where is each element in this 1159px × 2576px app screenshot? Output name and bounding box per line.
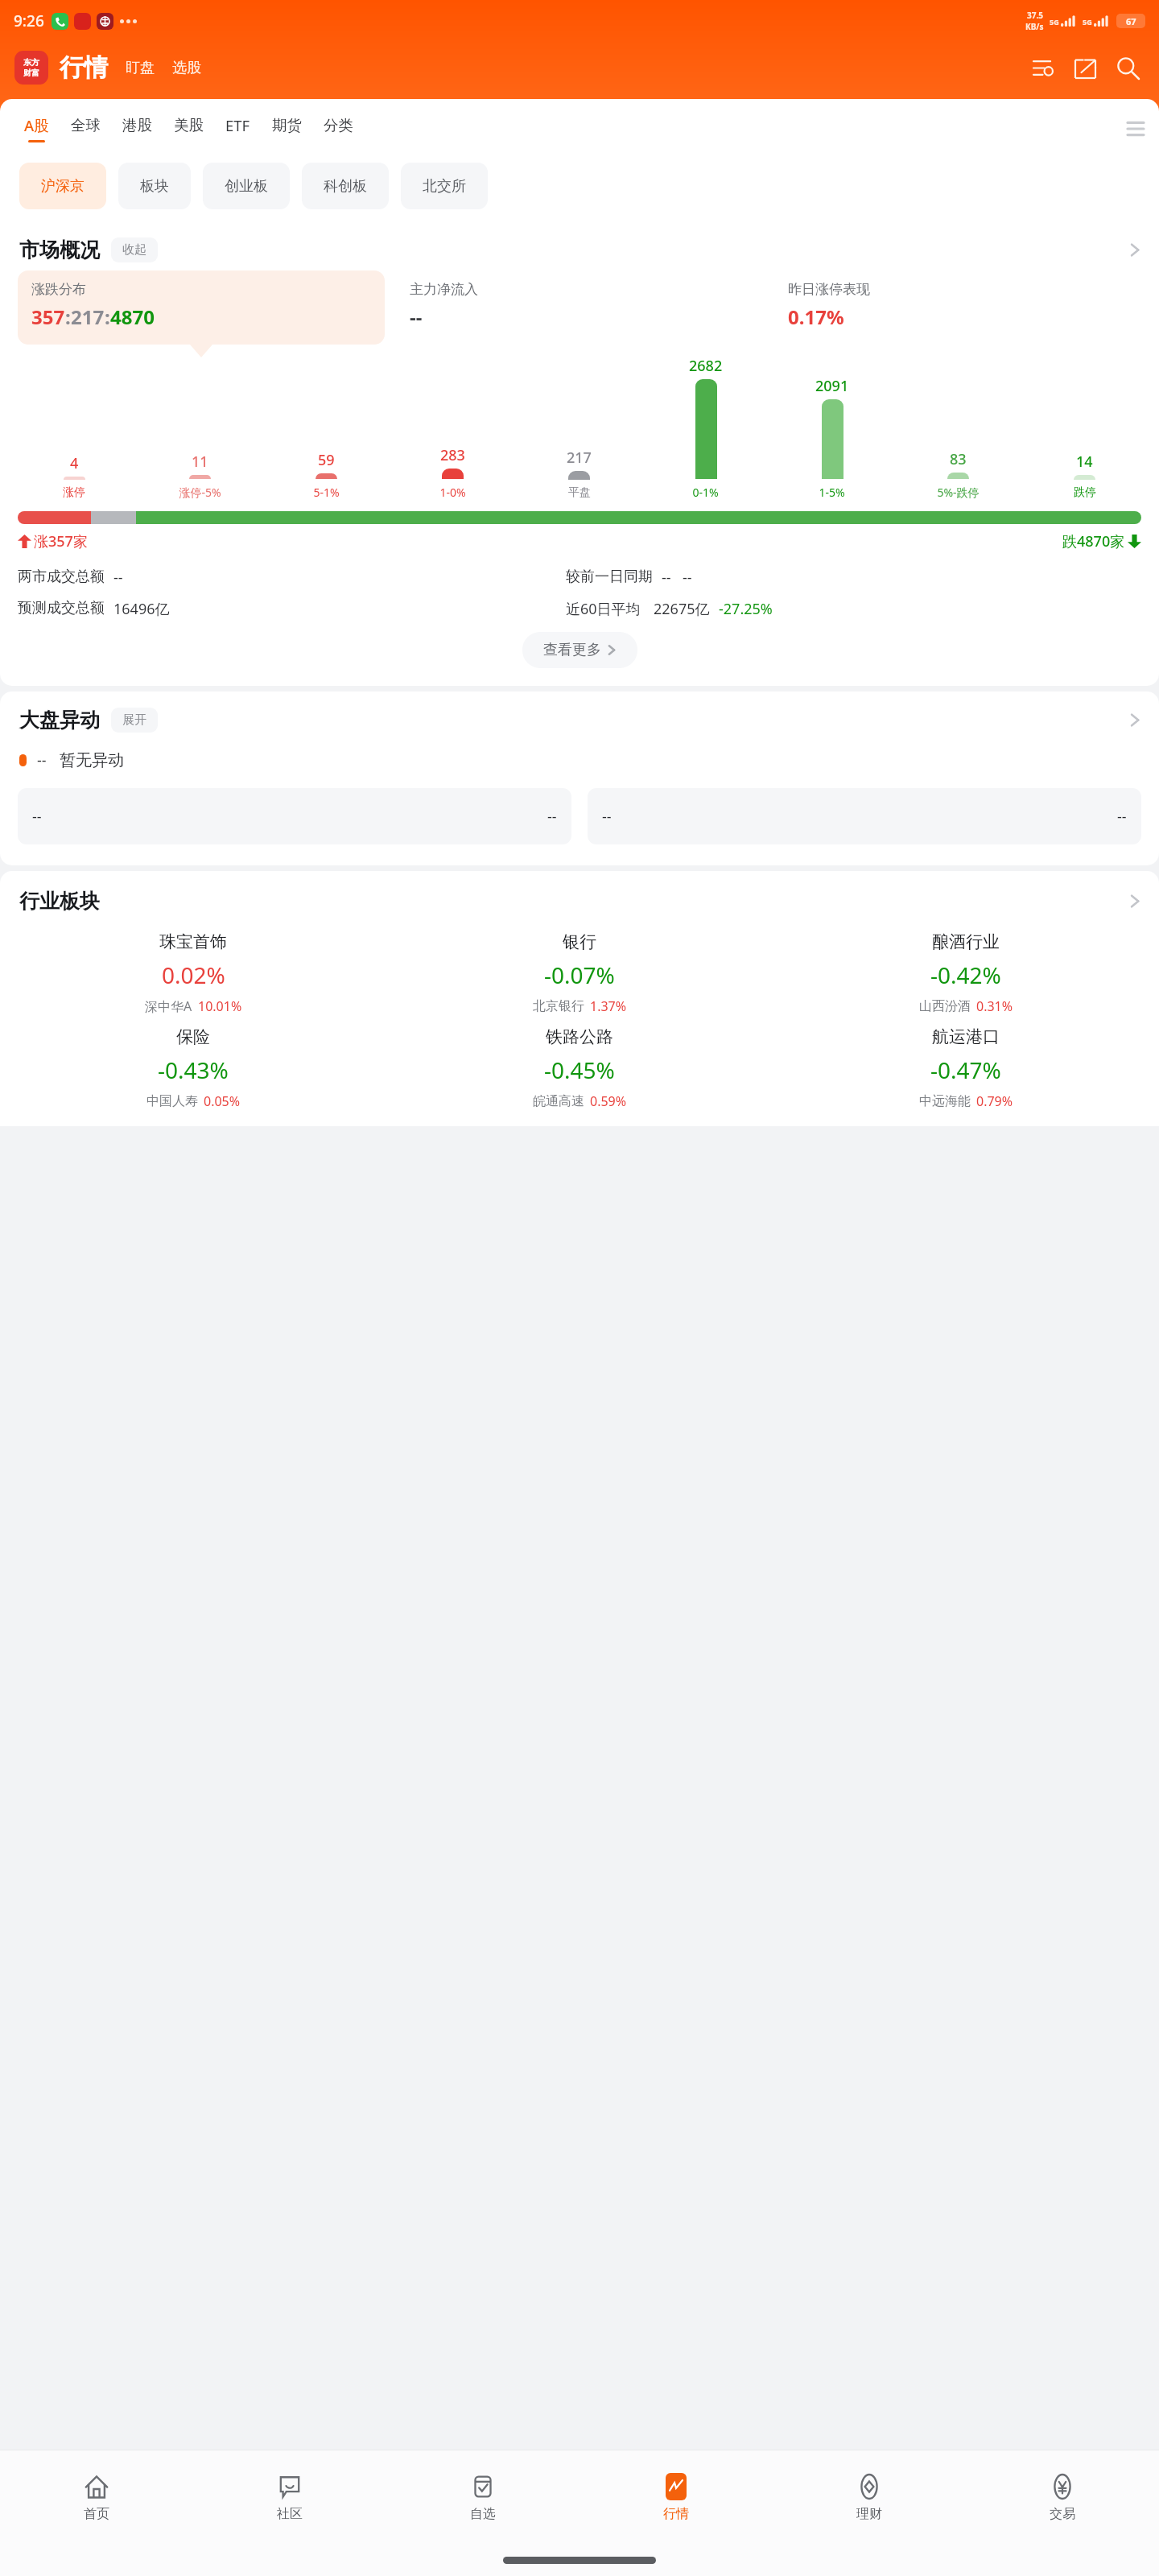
staticText: -- [1117, 807, 1127, 827]
button[interactable]: 行业板块 [19, 889, 1141, 914]
staticText: 22675亿 [654, 599, 710, 619]
button[interactable]: 设置 [1027, 52, 1059, 84]
staticText: -0.47% [930, 1055, 1001, 1085]
staticText: 1-5% [819, 485, 845, 500]
staticText: 0.31% [976, 997, 1013, 1015]
staticText: -0.45% [544, 1055, 615, 1085]
button[interactable]: 14 [1021, 353, 1148, 503]
staticText: 1-0% [439, 485, 466, 500]
button[interactable]: 217 [516, 353, 642, 503]
button[interactable]: 分享 [1069, 52, 1101, 84]
button[interactable]: 交易 [966, 2450, 1159, 2544]
staticText: 保险 [176, 1026, 210, 1047]
button[interactable]: -- [18, 788, 571, 844]
staticText: 0-1% [692, 485, 719, 500]
button[interactable]: 板块 [118, 163, 191, 209]
staticText: 283 [440, 445, 465, 465]
button[interactable]: 昨日涨停表现 [774, 270, 1141, 345]
staticText: 珠宝首饰 [159, 931, 227, 952]
staticText: 较前一日同期 [566, 568, 653, 586]
button[interactable]: 银行 [386, 931, 773, 1015]
staticText: 沪深京 [41, 177, 85, 196]
button[interactable]: A股 [18, 115, 56, 142]
staticText: 跌停 [1074, 485, 1096, 500]
button[interactable]: 盯盘 [122, 54, 158, 82]
button[interactable]: 选股 [169, 54, 204, 82]
button[interactable]: 全球 [64, 116, 107, 142]
button[interactable]: 搜索 [1111, 51, 1145, 85]
button[interactable]: 更多分类 [1120, 114, 1151, 144]
staticText: -0.07% [544, 960, 615, 990]
staticText: -0.42% [930, 960, 1001, 990]
staticText: 67 [1126, 15, 1136, 27]
staticText: 北交所 [423, 177, 466, 196]
button[interactable]: 保险 [0, 1026, 386, 1110]
staticText: A股 [24, 115, 49, 135]
button[interactable]: 分类 [317, 116, 360, 142]
button[interactable]: 2682 [642, 353, 769, 503]
staticText: KB/s [1025, 21, 1044, 32]
button[interactable]: 283 [390, 353, 516, 503]
staticText: 0.05% [204, 1092, 241, 1110]
staticText: 4 [70, 453, 79, 473]
staticText: 4870 [110, 303, 155, 330]
staticText: ETF [225, 115, 250, 135]
button[interactable]: 港股 [116, 116, 159, 142]
button[interactable]: 59 [263, 353, 390, 503]
staticText: -- [32, 807, 42, 827]
button[interactable]: 创业板 [203, 163, 290, 209]
staticText: 14 [1076, 452, 1093, 472]
staticText: 5G [1050, 17, 1059, 27]
staticText: 5G [1083, 17, 1092, 27]
staticText: 大盘异动 [19, 708, 100, 733]
button[interactable]: 2091 [769, 353, 895, 503]
staticText: 10.01% [198, 997, 242, 1015]
button[interactable]: 自选 [386, 2450, 579, 2544]
button[interactable]: 科创板 [302, 163, 389, 209]
button[interactable]: 美股 [167, 116, 210, 142]
staticText: 港股 [122, 116, 152, 134]
staticText: 5-1% [313, 485, 340, 500]
button[interactable]: 大盘异动 [19, 708, 1141, 733]
button[interactable]: 理财 [773, 2450, 966, 2544]
staticText: 涨357家 [34, 531, 88, 551]
button[interactable]: 涨跌分布 [18, 270, 385, 345]
staticText: 理财 [856, 2506, 882, 2522]
staticText: 板块 [140, 177, 169, 196]
staticText: 铁路公路 [546, 1026, 613, 1047]
staticText: 平盘 [568, 485, 591, 500]
staticText: 2682 [689, 356, 723, 376]
button[interactable]: 酿酒行业 [773, 931, 1159, 1015]
button[interactable]: 沪深京 [19, 163, 106, 209]
staticText: 217 [567, 448, 592, 468]
button[interactable]: 首页 [0, 2450, 193, 2544]
button[interactable]: 11 [137, 353, 263, 503]
button[interactable]: 行情 [579, 2450, 773, 2544]
button[interactable]: ETF [219, 115, 257, 142]
staticText: 山西汾酒 [919, 998, 971, 1014]
button[interactable]: 北交所 [401, 163, 488, 209]
staticText: 深中华A [145, 997, 192, 1015]
button[interactable]: 期货 [266, 116, 308, 142]
button[interactable]: 航运港口 [773, 1026, 1159, 1110]
button[interactable]: 主力净流入 [396, 270, 763, 345]
staticText: -- [37, 750, 47, 770]
staticText: 357 [31, 303, 65, 330]
staticText: -- [602, 807, 612, 827]
staticText: 中国人寿 [146, 1093, 198, 1109]
button[interactable]: 铁路公路 [386, 1026, 773, 1110]
staticText: -- [662, 568, 671, 588]
staticText: 盯盘 [126, 59, 155, 77]
button[interactable]: 社区 [193, 2450, 386, 2544]
button[interactable]: -- [588, 788, 1141, 844]
button[interactable]: 83 [895, 353, 1021, 503]
staticText: 中远海能 [919, 1093, 971, 1109]
staticText: 预测成交总额 [18, 599, 105, 617]
staticText: 分类 [324, 116, 353, 134]
button[interactable]: 查看更多 [522, 632, 637, 668]
staticText: 收起 [122, 242, 146, 258]
staticText: 近60日平均 [566, 599, 641, 619]
button[interactable]: 市场概况 [19, 237, 1141, 262]
button[interactable]: 珠宝首饰 [0, 931, 386, 1015]
button[interactable]: 4 [11, 353, 137, 503]
